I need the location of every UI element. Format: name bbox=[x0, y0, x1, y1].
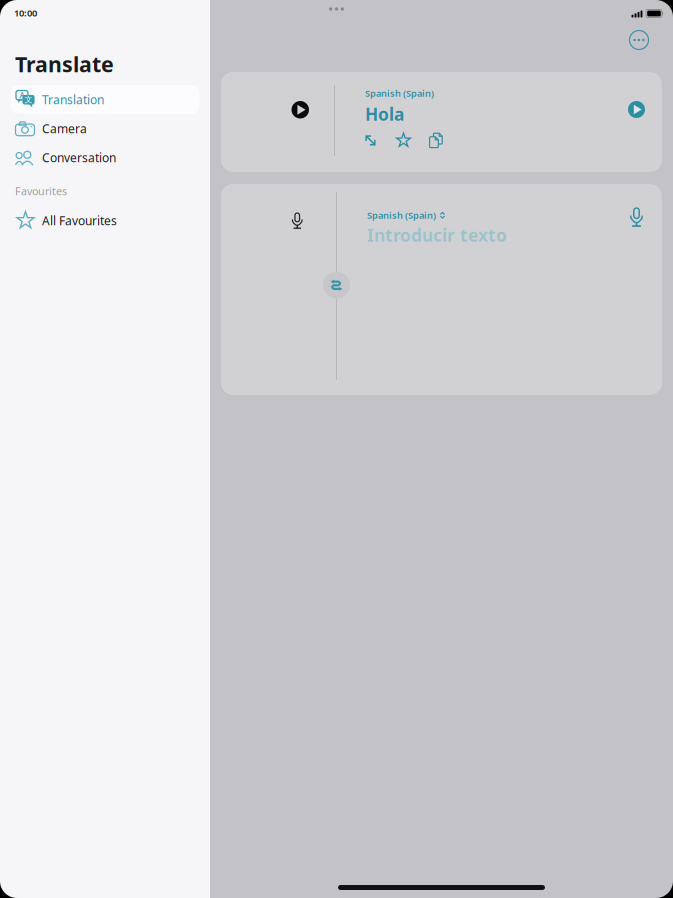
staticText: Favourites bbox=[15, 184, 67, 198]
button[interactable]: A bbox=[10, 85, 199, 114]
staticText: 文 bbox=[24, 95, 32, 105]
button[interactable]: Expand bbox=[354, 129, 387, 151]
button[interactable]: Copy bbox=[420, 129, 453, 151]
staticText: Translate bbox=[15, 50, 114, 78]
staticText: Translation bbox=[42, 91, 104, 107]
button[interactable]: Favourite bbox=[387, 129, 420, 151]
staticText: All Favourites bbox=[42, 212, 117, 228]
button[interactable]: Conversation bbox=[10, 143, 199, 172]
button[interactable]: Swap languages bbox=[319, 268, 353, 302]
staticText: A bbox=[19, 90, 24, 100]
staticText: Hola bbox=[365, 102, 404, 125]
button[interactable]: Dictate translation bbox=[611, 184, 662, 395]
staticText: Camera bbox=[42, 120, 87, 136]
button[interactable]: Dictate source bbox=[221, 184, 336, 395]
button[interactable]: Spanish (Spain) bbox=[367, 209, 446, 221]
staticText: Spanish (Spain) bbox=[367, 209, 436, 221]
staticText: Introducir texto bbox=[367, 223, 507, 246]
button[interactable]: Play source bbox=[221, 72, 334, 172]
button[interactable]: Camera bbox=[10, 114, 199, 143]
button[interactable]: All Favourites bbox=[10, 206, 199, 235]
staticText: Spanish (Spain) bbox=[365, 87, 434, 99]
button[interactable]: Multitasking controls bbox=[311, 2, 361, 16]
staticText: 10:00 bbox=[14, 7, 37, 19]
staticText: Conversation bbox=[42, 149, 116, 165]
button[interactable]: Play translation bbox=[611, 72, 662, 172]
button[interactable]: More bbox=[624, 25, 654, 55]
